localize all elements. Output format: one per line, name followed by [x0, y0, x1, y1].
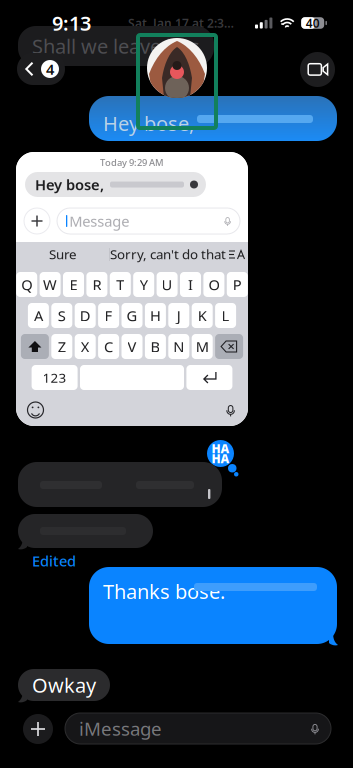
staticText: 123: [43, 369, 67, 386]
staticText: Sorry, can't do that: [110, 245, 226, 263]
button[interactable]: Contact: [147, 38, 207, 98]
staticText: Sure: [49, 245, 77, 263]
button[interactable]: Message field: [65, 713, 331, 744]
staticText: Today 9:29 AM: [100, 156, 164, 169]
staticText: O: [208, 275, 219, 294]
staticText: H: [150, 306, 161, 325]
staticText: V: [127, 337, 136, 356]
staticText: T: [116, 275, 124, 294]
staticText: D: [80, 306, 91, 325]
staticText: W: [43, 275, 57, 294]
staticText: Q: [21, 275, 32, 294]
button[interactable]: Add attachment: [23, 714, 53, 744]
staticText: Hey bose,: [103, 110, 194, 137]
staticText: Shall we leave bos: [32, 33, 200, 59]
staticText: X: [81, 337, 90, 356]
staticText: Owkay: [32, 672, 96, 698]
staticText: 4: [46, 59, 54, 79]
staticText: K: [198, 306, 207, 325]
staticText: G: [126, 306, 137, 325]
staticText: B: [150, 337, 160, 356]
staticText: Hey bose,: [35, 175, 104, 194]
staticText: F: [105, 306, 113, 325]
staticText: L: [222, 306, 230, 325]
staticText: J: [177, 306, 181, 325]
button[interactable]: FaceTime: [300, 52, 335, 87]
staticText: HA: [211, 440, 229, 456]
staticText: Y: [140, 275, 148, 294]
staticText: R: [92, 275, 101, 294]
staticText: 40: [306, 15, 320, 31]
staticText: E: [69, 275, 77, 294]
staticText: 9:13: [52, 10, 91, 36]
staticText: Message: [69, 211, 129, 231]
staticText: C: [104, 337, 113, 356]
staticText: U: [162, 275, 173, 294]
staticText: M: [196, 337, 209, 356]
staticText: Sat, Jan 17 at 2:33 PM: [128, 15, 238, 31]
staticText: Thanks bose.: [103, 578, 225, 605]
staticText: Z: [58, 337, 66, 356]
staticText: N: [173, 337, 184, 356]
staticText: S: [58, 306, 66, 325]
staticText: iMessage: [79, 716, 162, 741]
button[interactable]: Back: [17, 53, 65, 85]
staticText: I: [188, 275, 193, 294]
staticText: HA: [211, 450, 229, 466]
staticText: P: [233, 275, 242, 294]
staticText: A: [34, 306, 43, 325]
staticText: Edited: [32, 551, 76, 570]
